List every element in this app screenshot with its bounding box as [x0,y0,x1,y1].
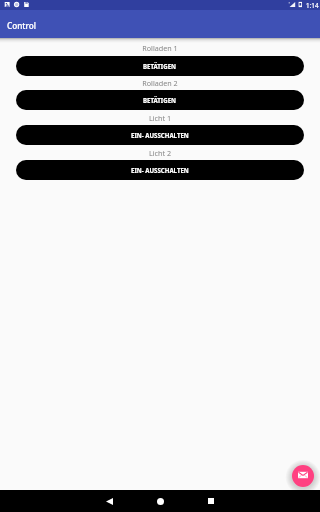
staticText: BETÄTIGEN [143,96,177,104]
button[interactable]: EIN- AUSSCHALTEN [16,125,304,145]
staticText: Licht 2 [0,148,320,158]
button[interactable]: BETÄTIGEN [16,90,304,110]
button[interactable]: Home [149,490,171,512]
button[interactable]: Back [98,490,120,512]
staticText: BETÄTIGEN [143,62,177,70]
staticText: Licht 1 [0,113,320,123]
staticText: EIN- AUSSCHALTEN [131,166,189,174]
staticText: Rolladen 2 [0,78,320,88]
button[interactable]: Recents [200,490,222,512]
staticText: Control [7,20,36,31]
staticText: EIN- AUSSCHALTEN [131,131,189,139]
button[interactable]: BETÄTIGEN [16,56,304,76]
button[interactable]: Compose email [292,465,314,487]
staticText: Rolladen 1 [0,43,320,53]
staticText: 1:14 [306,1,319,10]
button[interactable]: EIN- AUSSCHALTEN [16,160,304,180]
